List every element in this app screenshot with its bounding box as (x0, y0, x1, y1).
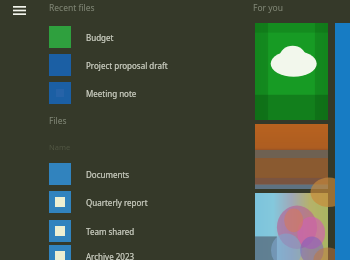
staticText: Name (49, 142, 71, 152)
button[interactable]: Team shared (49, 220, 229, 242)
staticText: For you (253, 2, 284, 14)
button[interactable]: Archive 2023 (49, 245, 229, 260)
button[interactable]: Quarterly report (49, 191, 229, 213)
button[interactable] (255, 193, 328, 260)
staticText: Archive 2023 (86, 251, 135, 260)
staticText: Budget (86, 32, 114, 43)
button[interactable]: Documents (49, 163, 229, 185)
staticText: Project proposal draft (86, 60, 168, 71)
button[interactable]: Project proposal draft (49, 54, 229, 76)
button[interactable]: Menu (5, 0, 33, 24)
staticText: Recent files (49, 2, 95, 14)
staticText: Meeting note (86, 88, 137, 99)
button[interactable] (255, 124, 328, 189)
staticText: Documents (86, 169, 130, 180)
button[interactable]: Meeting note (49, 82, 229, 104)
button[interactable]: Budget (49, 26, 229, 48)
staticText: Files (49, 115, 67, 127)
button[interactable] (255, 23, 328, 120)
staticText: Quarterly report (86, 197, 148, 208)
staticText: Team shared (86, 226, 135, 237)
